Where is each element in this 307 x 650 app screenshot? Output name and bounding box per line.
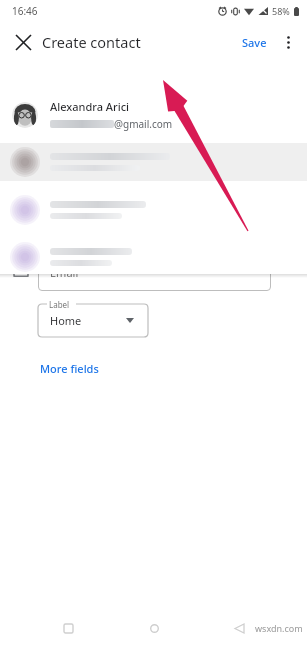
button[interactable]: More options xyxy=(273,27,303,57)
staticText: 16:46 xyxy=(12,4,38,18)
staticText: Mobile xyxy=(50,215,86,230)
button[interactable]: Phone xyxy=(38,155,271,193)
button[interactable]: @gmail.com xyxy=(58,70,295,96)
staticText: Phone xyxy=(50,167,84,182)
staticText: Company xyxy=(50,115,100,130)
button[interactable]: More fields xyxy=(36,357,103,380)
staticText: Label xyxy=(49,299,70,310)
staticText: @gmail.com xyxy=(114,117,173,131)
button[interactable]: Save xyxy=(236,29,273,56)
staticText: wsxdn.com xyxy=(255,622,303,634)
button[interactable] xyxy=(0,191,307,229)
button[interactable] xyxy=(0,143,307,181)
button[interactable]: Home xyxy=(137,611,171,645)
button[interactable]: Close xyxy=(6,25,40,59)
button[interactable]: Company xyxy=(38,103,271,141)
staticText: @gmail.com xyxy=(141,76,203,90)
staticText: Email xyxy=(50,265,79,280)
staticText: Home xyxy=(50,313,82,328)
staticText: Create contact xyxy=(42,32,141,52)
staticText: Save xyxy=(242,35,267,50)
button[interactable]: Email xyxy=(38,253,271,291)
staticText: Label xyxy=(49,201,70,212)
button[interactable] xyxy=(0,239,307,274)
button[interactable]: Back xyxy=(222,611,256,645)
staticText: Alexandra Arici xyxy=(50,99,130,114)
button[interactable]: Label xyxy=(38,299,148,337)
button[interactable]: Recent apps xyxy=(51,611,85,645)
button[interactable]: Alexandra Arici xyxy=(0,93,307,137)
button[interactable]: Label xyxy=(38,201,148,239)
staticText: 58% xyxy=(272,5,290,17)
staticText: More fields xyxy=(40,361,99,376)
